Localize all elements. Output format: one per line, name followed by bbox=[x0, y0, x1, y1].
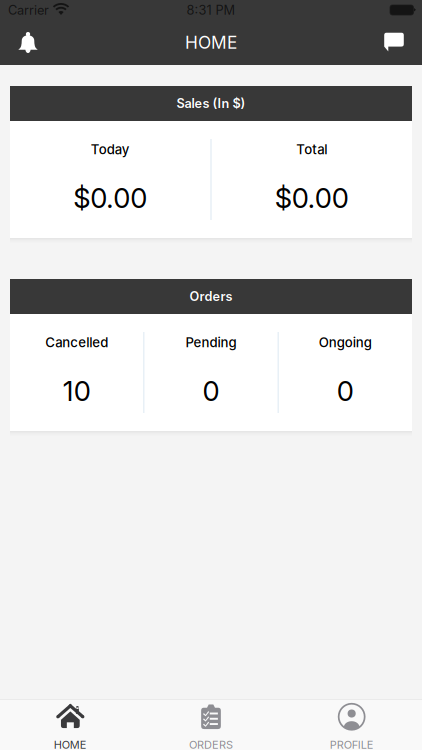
button[interactable]: PROFILE bbox=[281, 699, 422, 750]
staticText: Sales (In $) bbox=[176, 96, 245, 111]
staticText: HOME bbox=[185, 32, 237, 53]
staticText: Ongoing bbox=[319, 334, 372, 350]
staticText: 0 bbox=[337, 374, 354, 408]
button[interactable]: Notifications bbox=[0, 20, 56, 65]
button[interactable]: Messages bbox=[366, 20, 422, 65]
staticText: ORDERS bbox=[189, 738, 233, 750]
button[interactable]: HOME bbox=[0, 699, 141, 750]
staticText: Orders bbox=[189, 289, 232, 304]
staticText: $0.00 bbox=[73, 181, 147, 215]
staticText: HOME bbox=[54, 738, 87, 750]
staticText: $0.00 bbox=[275, 181, 349, 215]
staticText: 10 bbox=[63, 374, 91, 408]
staticText: PROFILE bbox=[330, 738, 374, 750]
staticText: Today bbox=[91, 141, 130, 157]
staticText: Pending bbox=[185, 334, 236, 350]
staticText: Cancelled bbox=[45, 334, 108, 350]
staticText: 8:31 PM bbox=[186, 2, 235, 18]
staticText: Total bbox=[296, 141, 327, 157]
staticText: Carrier bbox=[8, 2, 49, 18]
button[interactable]: ORDERS bbox=[141, 699, 281, 750]
staticText: 0 bbox=[202, 374, 219, 408]
